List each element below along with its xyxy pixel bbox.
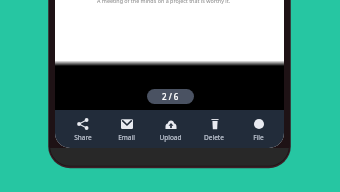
staticText: Upload: [159, 133, 182, 142]
staticText: A meeting of the minds on a project that…: [97, 0, 231, 4]
button[interactable]: Share: [61, 110, 104, 148]
staticText: 2 / 6: [162, 91, 179, 102]
staticText: Email: [118, 133, 135, 142]
button[interactable]: Email: [104, 110, 148, 148]
staticText: Share: [74, 133, 92, 142]
button[interactable]: Delete: [192, 110, 236, 148]
staticText: File: [253, 133, 264, 142]
staticText: Delete: [204, 133, 224, 142]
button[interactable]: Upload: [148, 110, 192, 148]
button[interactable]: 2 / 6: [147, 89, 194, 104]
button[interactable]: File: [236, 110, 280, 148]
